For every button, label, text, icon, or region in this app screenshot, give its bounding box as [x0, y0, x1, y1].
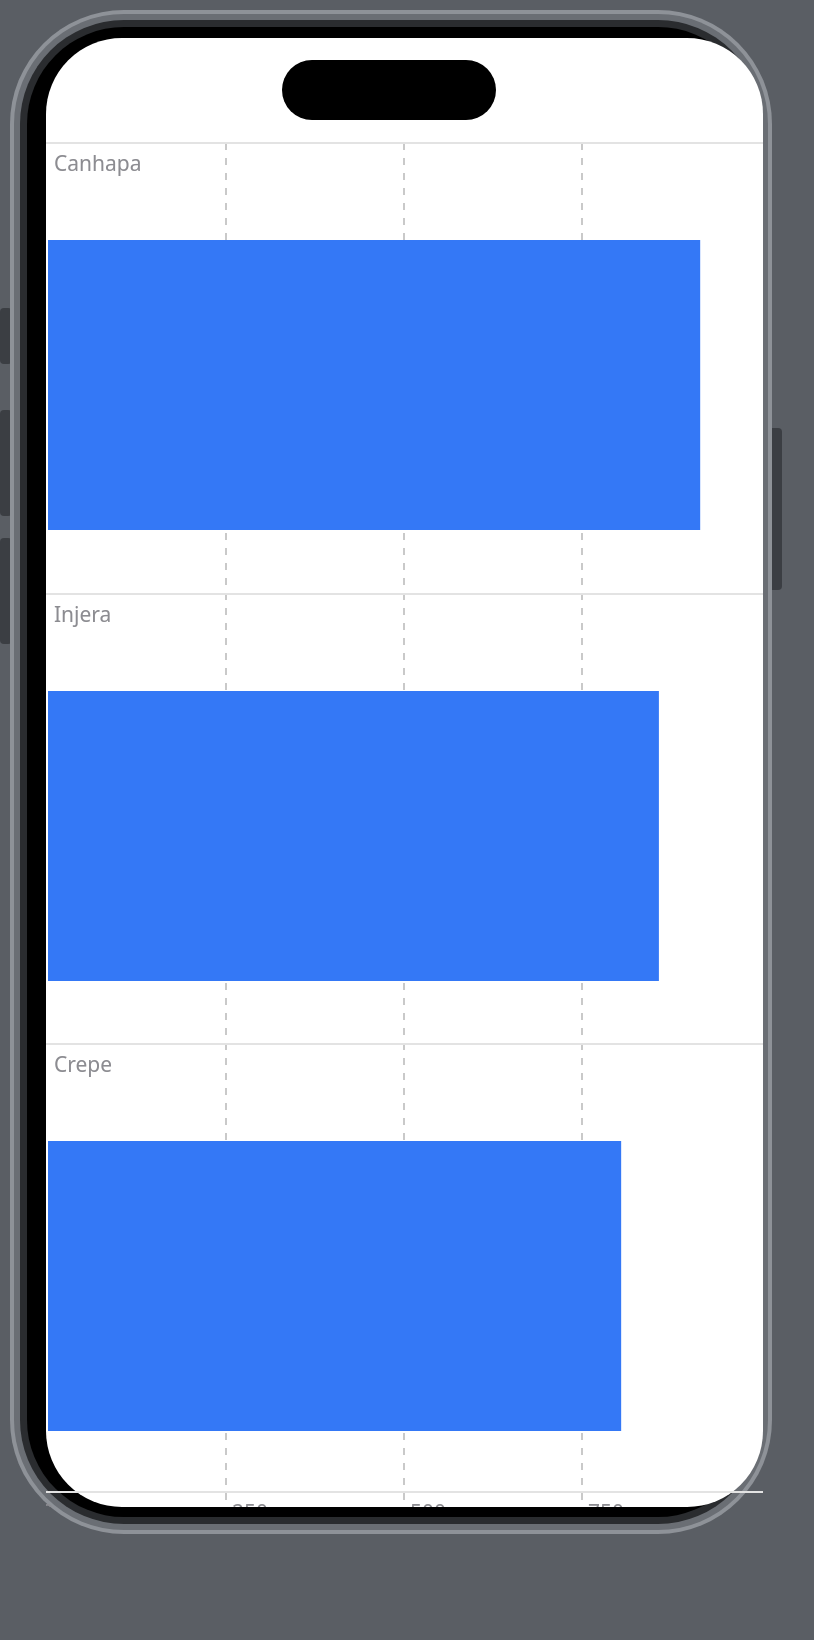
- button[interactable]: Horizontal bar chart: Canhapa, Injera, C…: [0, 0, 814, 1640]
